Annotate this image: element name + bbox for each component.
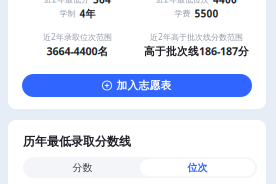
staticText: 4年 [79, 7, 95, 20]
button[interactable]: 分数 [25, 159, 140, 176]
staticText: 近2年录取位次范围 [43, 32, 112, 42]
staticText: 近2年高于批次线分数范围 [150, 32, 243, 42]
staticText: 位次 [187, 161, 207, 174]
staticText: 3664-4400名 [46, 44, 108, 58]
staticText: 近2年最低位次 [156, 0, 209, 5]
staticText: 分数 [72, 161, 92, 174]
staticText: 5500 [194, 7, 218, 20]
staticText: 近2年最低分 [44, 0, 89, 5]
staticText: 加入志愿表 [116, 79, 171, 92]
staticText: 高于批次线186-187分 [144, 44, 249, 58]
staticText: 4400 [213, 0, 237, 6]
button[interactable]: 位次 [140, 159, 255, 176]
staticText: 564 [93, 0, 111, 6]
button[interactable]: 加入志愿表 [22, 74, 252, 97]
staticText: 学制 [59, 8, 75, 19]
staticText: 历年最低录取分数线 [23, 134, 131, 149]
staticText: 学费 [174, 8, 190, 19]
